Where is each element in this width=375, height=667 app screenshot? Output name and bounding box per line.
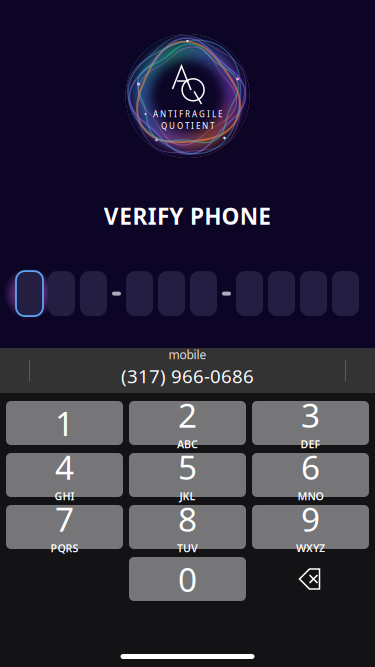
staticText: PQRS [50,541,78,555]
staticText: 9 [301,497,320,541]
button[interactable]: 8 [129,505,246,549]
button[interactable]: Digit [190,271,217,316]
staticText: DEF [300,437,320,451]
button[interactable]: 4 [6,453,123,497]
staticText: 2 [178,393,197,437]
staticText: WXYZ [296,541,325,555]
staticText: TUV [177,541,198,555]
button[interactable]: 7 [6,505,123,549]
staticText: A N T I F R A G I L E [153,109,222,119]
button[interactable]: 2 [129,401,246,445]
button[interactable]: Digit [48,271,75,316]
staticText: (317) 966-0686 [121,364,254,388]
button[interactable]: 9 [252,505,369,549]
staticText: GHI [54,489,74,503]
button[interactable]: 1 [6,401,123,445]
button[interactable]: 3 [252,401,369,445]
staticText: 4 [55,445,74,489]
staticText: 0 [178,557,197,601]
staticText: ABC [177,437,198,451]
button[interactable]: Digit [126,271,153,316]
staticText: 7 [55,497,74,541]
button[interactable]: Digit [268,271,295,316]
button[interactable]: Delete [252,557,369,601]
staticText: JKL [179,489,195,503]
staticText: 3 [301,393,320,437]
staticText: MNO [297,489,323,503]
button[interactable]: 0 [129,557,246,601]
button[interactable]: Digit [158,271,185,316]
button[interactable]: Digit [236,271,263,316]
staticText: VERIFY PHONE [104,201,271,231]
staticText: Q U O T I E N T [161,120,214,131]
staticText: 5 [178,445,197,489]
button[interactable]: 5 [129,453,246,497]
staticText: 1 [55,401,74,445]
button[interactable]: Digit [80,271,107,316]
staticText: 6 [301,445,320,489]
button[interactable]: Digit [300,271,327,316]
button[interactable]: Digit [16,271,43,316]
button[interactable]: 6 [252,453,369,497]
button[interactable]: Digit [332,271,359,316]
staticText: mobile [168,347,206,362]
staticText: 8 [178,497,197,541]
